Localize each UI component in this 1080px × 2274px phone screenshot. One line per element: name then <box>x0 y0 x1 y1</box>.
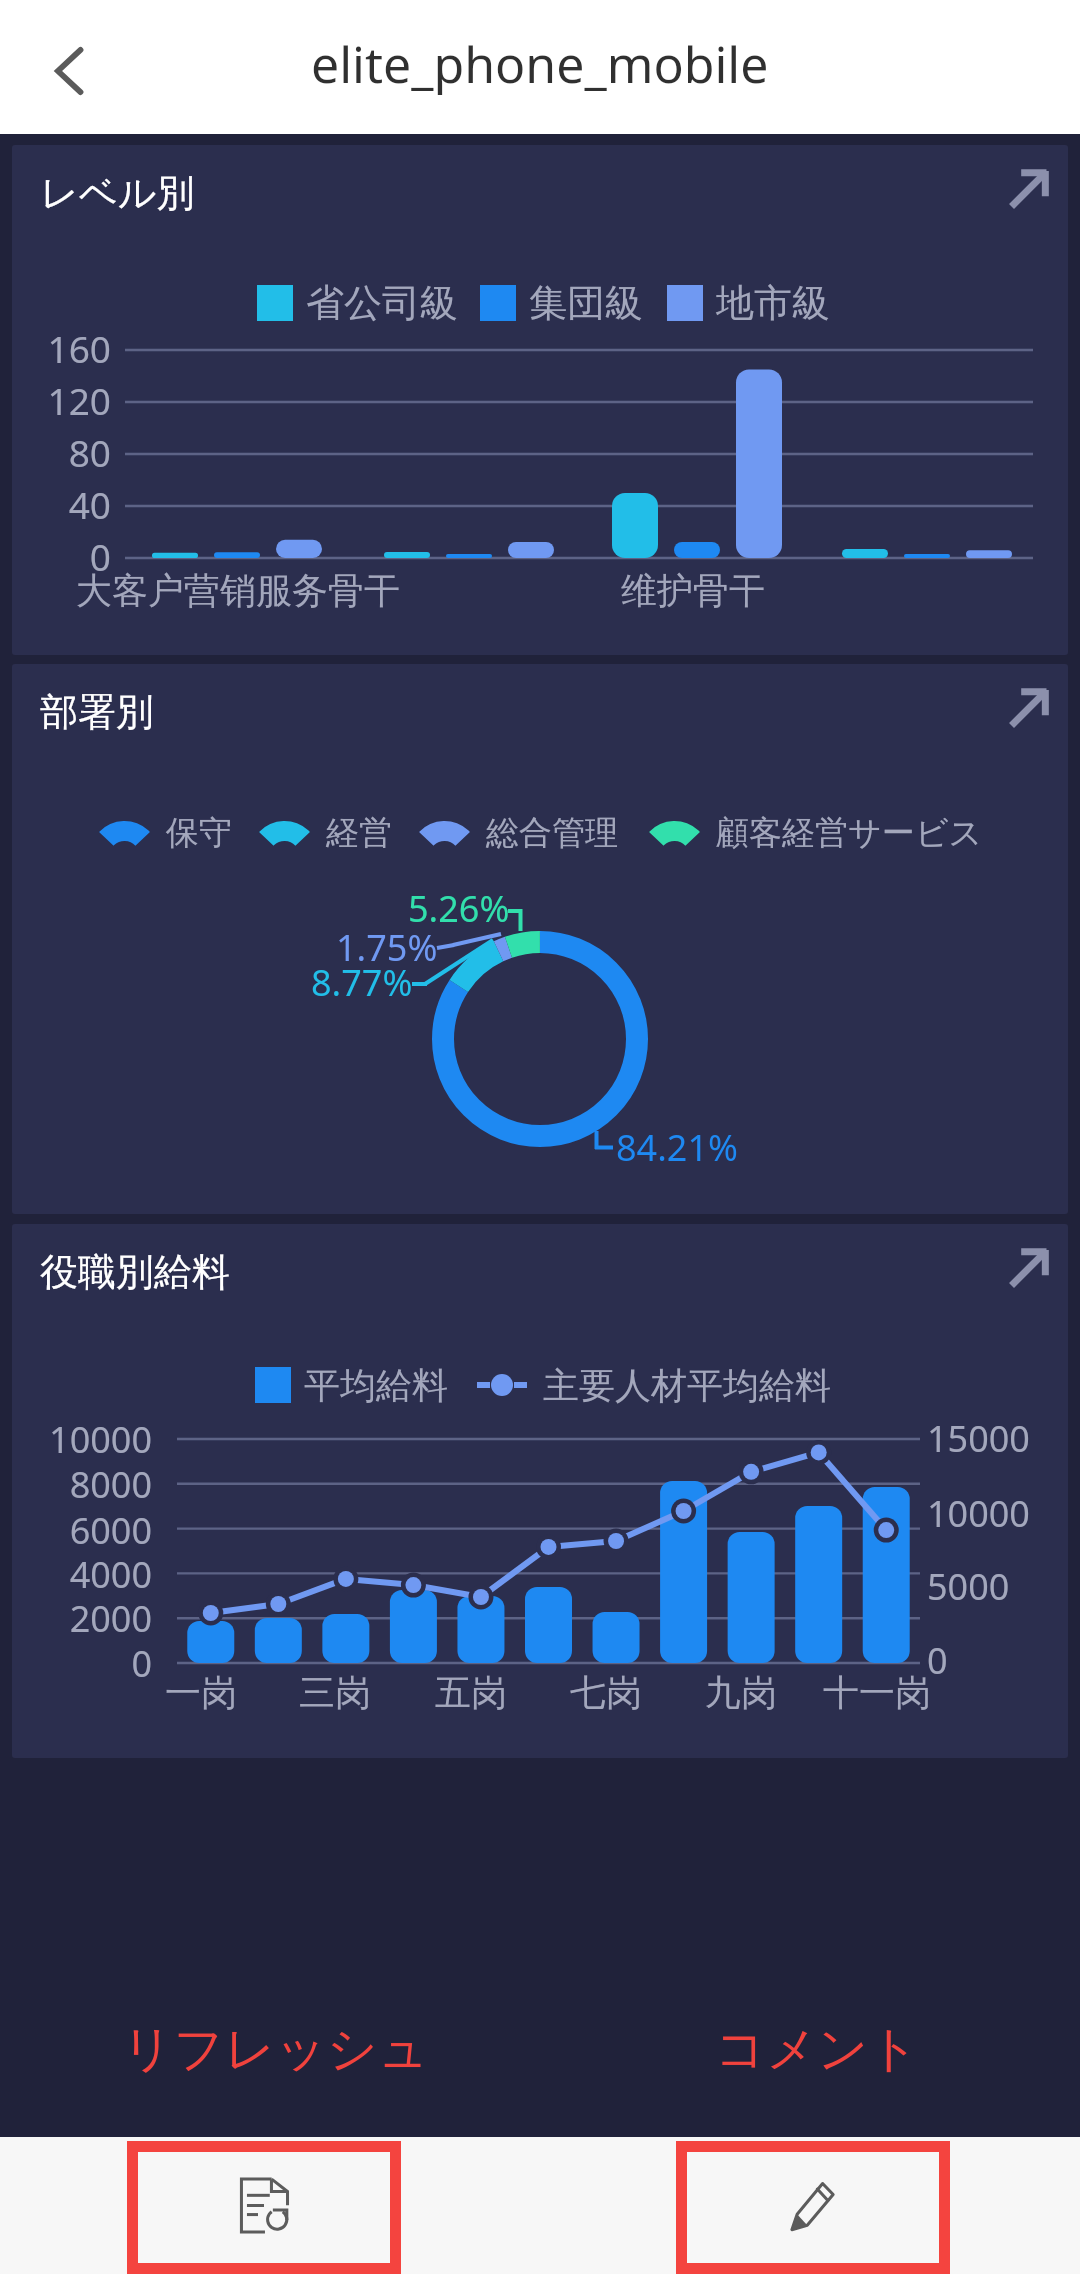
staticText: 8.77% <box>311 958 413 1007</box>
staticText: 4000 <box>69 1550 152 1599</box>
staticText: 0 <box>89 531 111 581</box>
staticText: 三岗 <box>299 1670 371 1715</box>
staticText: 地市級 <box>716 279 830 327</box>
button[interactable]: Refresh report <box>127 2141 401 2274</box>
button[interactable]: Expand chart <box>1006 166 1052 212</box>
staticText: 総合管理 <box>486 812 618 854</box>
staticText: 40 <box>68 479 111 529</box>
button[interactable]: 省公司級 <box>12 145 1068 655</box>
staticText: 10000 <box>927 1489 1030 1538</box>
staticText: 五岗 <box>435 1670 507 1715</box>
staticText: elite_phone_mobile <box>311 30 769 98</box>
staticText: 省公司級 <box>306 279 458 327</box>
staticText: 维护骨干 <box>621 568 765 613</box>
staticText: 七岗 <box>570 1670 642 1715</box>
staticText: 120 <box>47 375 111 425</box>
staticText: 主要人材平均給料 <box>543 1363 831 1408</box>
staticText: 0 <box>927 1636 948 1685</box>
staticText: 一岗 <box>165 1670 237 1715</box>
staticText: 6000 <box>69 1506 152 1555</box>
staticText: 8000 <box>69 1460 152 1509</box>
staticText: 5.26% <box>408 884 510 933</box>
staticText: 部署別 <box>40 688 154 736</box>
staticText: 2000 <box>69 1594 152 1643</box>
button[interactable]: Expand chart <box>1006 1245 1052 1291</box>
staticText: 10000 <box>49 1415 152 1464</box>
button[interactable]: Back <box>27 29 111 113</box>
staticText: 九岗 <box>705 1670 777 1715</box>
staticText: 160 <box>47 323 111 373</box>
staticText: 大客户营销服务骨干 <box>76 568 400 613</box>
button[interactable]: 平均給料 <box>12 1224 1068 1758</box>
button[interactable]: コメント <box>647 2004 987 2094</box>
staticText: 5000 <box>927 1562 1010 1611</box>
staticText: 平均給料 <box>304 1363 448 1408</box>
button[interactable]: 保守 <box>12 664 1068 1214</box>
staticText: 経営 <box>326 812 392 854</box>
staticText: 集団級 <box>529 279 643 327</box>
button[interactable]: Expand chart <box>1006 685 1052 731</box>
staticText: 0 <box>131 1639 152 1688</box>
staticText: 十一岗 <box>823 1670 931 1715</box>
staticText: 84.21% <box>616 1123 738 1172</box>
staticText: 保守 <box>166 812 232 854</box>
staticText: リフレッシュ <box>122 2018 430 2081</box>
staticText: 1.75% <box>336 923 438 972</box>
staticText: 80 <box>68 427 111 477</box>
staticText: レベル別 <box>40 169 195 217</box>
button[interactable]: リフレッシュ <box>76 2004 476 2094</box>
staticText: 15000 <box>927 1414 1030 1463</box>
staticText: 役職別給料 <box>40 1248 230 1296</box>
staticText: コメント <box>715 2018 920 2081</box>
button[interactable]: Comment <box>676 2141 950 2274</box>
staticText: 顧客経営サービス <box>716 812 983 854</box>
